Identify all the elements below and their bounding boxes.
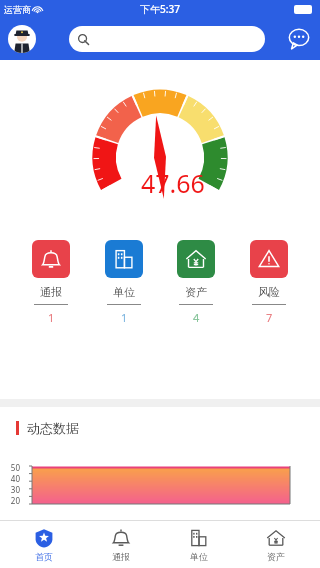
staticText: 1 bbox=[121, 310, 128, 325]
staticText: 30 bbox=[4, 484, 20, 495]
button[interactable]: 风险 bbox=[238, 240, 300, 325]
staticText: 20 bbox=[4, 495, 20, 506]
staticText: 风险 bbox=[258, 285, 280, 299]
button[interactable]: Profile bbox=[8, 25, 36, 53]
button[interactable]: 资产 bbox=[165, 240, 227, 325]
staticText: 通报 bbox=[112, 551, 130, 562]
button[interactable]: 单位 bbox=[166, 521, 232, 568]
button[interactable]: 单位 bbox=[93, 240, 155, 325]
staticText: 40 bbox=[4, 473, 20, 484]
staticText: 4 bbox=[193, 310, 200, 325]
staticText: 资产 bbox=[267, 551, 285, 562]
staticText: 下午5:37 bbox=[140, 2, 180, 16]
staticText: 7 bbox=[266, 310, 273, 325]
staticText: 单位 bbox=[113, 285, 135, 299]
button[interactable]: 通报 bbox=[88, 521, 154, 568]
button[interactable]: 首页 bbox=[11, 521, 77, 568]
staticText: 动态数据 bbox=[27, 420, 79, 436]
button[interactable]: Messages bbox=[286, 26, 312, 52]
button[interactable]: Search bbox=[69, 26, 265, 52]
staticText: 50 bbox=[4, 462, 20, 473]
staticText: 首页 bbox=[35, 551, 53, 562]
staticText: 47.66 bbox=[141, 166, 205, 200]
staticText: 单位 bbox=[190, 551, 208, 562]
staticText: 通报 bbox=[40, 285, 62, 299]
staticText: 1 bbox=[48, 310, 55, 325]
staticText: 资产 bbox=[185, 285, 207, 299]
button[interactable]: 通报 bbox=[20, 240, 82, 325]
button[interactable]: 资产 bbox=[243, 521, 309, 568]
staticText: 运营商 bbox=[4, 4, 31, 15]
